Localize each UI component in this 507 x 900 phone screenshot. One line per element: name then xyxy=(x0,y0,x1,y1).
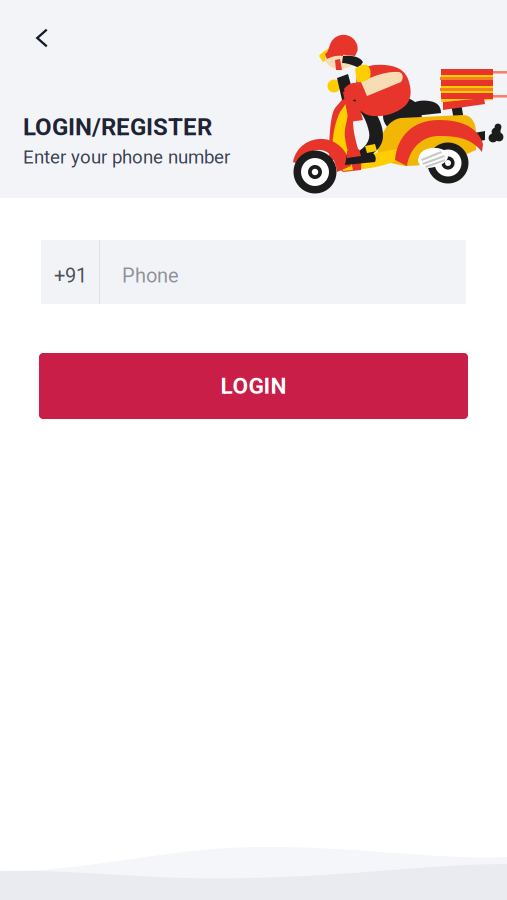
staticText: LOGIN xyxy=(220,373,286,399)
staticText: LOGIN/REGISTER xyxy=(23,113,212,141)
staticText: +91 xyxy=(54,264,87,287)
button[interactable]: Back xyxy=(22,18,62,58)
staticText: Phone xyxy=(122,264,179,287)
staticText: Enter your phone number xyxy=(23,146,230,168)
button[interactable]: LOGIN xyxy=(39,353,468,419)
